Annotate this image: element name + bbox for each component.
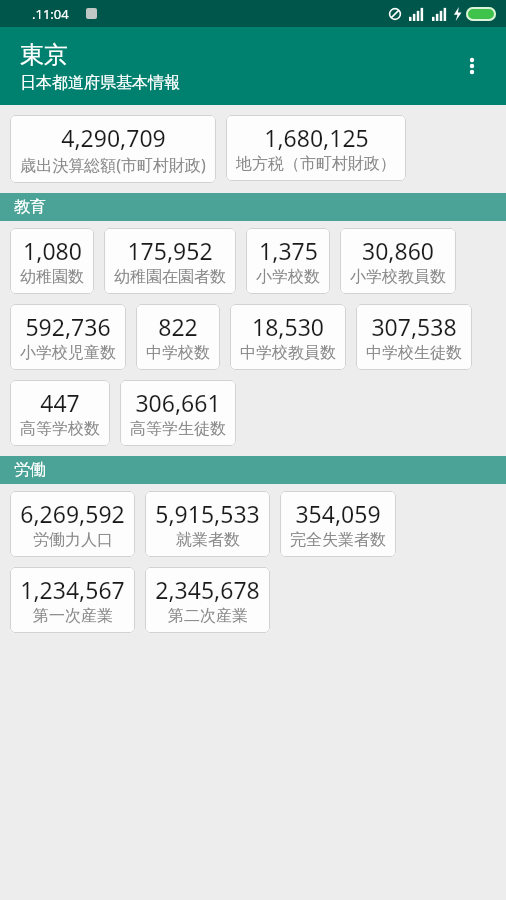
staticText: 幼稚園在園者数	[114, 267, 226, 287]
staticText: 幼稚園数	[20, 267, 84, 287]
staticText: 2,345,678	[155, 574, 260, 605]
staticText: 教育	[14, 197, 46, 217]
staticText: 東京	[20, 40, 68, 70]
button[interactable]: 6,269,592	[10, 491, 135, 557]
staticText: 1,234,567	[20, 574, 125, 605]
button[interactable]: 4,290,709	[10, 115, 216, 183]
button[interactable]: 1,080	[10, 228, 94, 294]
staticText: 歳出決算総額(市町村財政)	[20, 154, 206, 176]
button[interactable]: More options	[450, 44, 494, 88]
button[interactable]: 5,915,533	[145, 491, 270, 557]
staticText: 1,680,125	[264, 122, 369, 153]
button[interactable]: 306,661	[120, 380, 236, 446]
button[interactable]: 354,059	[280, 491, 396, 557]
staticText: 822	[158, 311, 198, 342]
staticText: 447	[40, 387, 80, 418]
button[interactable]: 30,860	[340, 228, 456, 294]
staticText: 地方税（市町村財政）	[236, 154, 396, 174]
staticText: 5,915,533	[155, 498, 260, 529]
staticText: 小学校数	[256, 267, 320, 287]
button[interactable]: 18,530	[230, 304, 346, 370]
staticText: 小学校教員数	[350, 267, 446, 287]
staticText: 小学校児童数	[20, 343, 116, 363]
staticText: 中学校生徒数	[366, 343, 462, 363]
staticText: 中学校教員数	[240, 343, 336, 363]
staticText: 354,059	[295, 498, 381, 529]
staticText: 1,080	[23, 235, 82, 266]
staticText: 高等学生徒数	[130, 419, 226, 439]
staticText: 労働力人口	[33, 530, 113, 550]
staticText: 中学校数	[146, 343, 210, 363]
button[interactable]: 175,952	[104, 228, 236, 294]
staticText: 18,530	[252, 311, 324, 342]
staticText: 就業者数	[176, 530, 240, 550]
staticText: 30,860	[362, 235, 434, 266]
button[interactable]: 307,538	[356, 304, 472, 370]
staticText: 第二次産業	[168, 606, 248, 626]
button[interactable]: 1,375	[246, 228, 330, 294]
staticText: 4,290,709	[61, 122, 166, 153]
staticText: 592,736	[25, 311, 111, 342]
staticText: 6,269,592	[20, 498, 125, 529]
staticText: 高等学校数	[20, 419, 100, 439]
staticText: 労働	[14, 460, 46, 480]
staticText: 1,375	[259, 235, 318, 266]
button[interactable]: 2,345,678	[145, 567, 270, 633]
button[interactable]: 822	[136, 304, 220, 370]
staticText: 日本都道府県基本情報	[20, 73, 180, 93]
staticText: 307,538	[371, 311, 457, 342]
staticText: 175,952	[127, 235, 213, 266]
staticText: 完全失業者数	[290, 530, 386, 550]
button[interactable]: 447	[10, 380, 110, 446]
staticText: 第一次産業	[33, 606, 113, 626]
button[interactable]: 592,736	[10, 304, 126, 370]
button[interactable]: 1,680,125	[226, 115, 406, 181]
staticText: .11:04	[32, 5, 69, 23]
staticText: 306,661	[135, 387, 221, 418]
button[interactable]: 1,234,567	[10, 567, 135, 633]
